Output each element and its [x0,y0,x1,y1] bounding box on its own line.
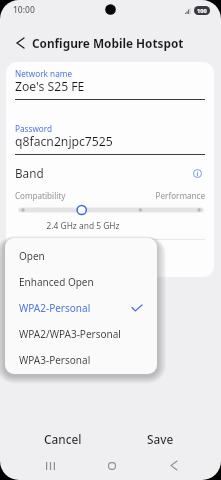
staticText: Open [19,249,45,263]
staticText: Cancel [44,431,82,447]
staticText: Compatibility [15,190,66,201]
staticText: q8facn2njpc7525 [15,133,113,150]
button[interactable]: Network name [15,68,205,108]
staticText: WPA2-Personal [19,301,91,315]
staticText: 100 [197,7,207,15]
button[interactable]: Cancel [33,427,93,451]
staticText: WPA2/WPA3-Personal [19,327,121,341]
button[interactable]: Home [97,451,126,480]
button[interactable]: WPA3-Personal [5,347,157,373]
button[interactable]: Band information [188,164,206,182]
button[interactable]: Password [15,123,205,163]
staticText: Save [147,431,174,447]
staticText: Enhanced Open [19,275,94,289]
staticText: Zoe's S25 FE [15,78,85,95]
staticText: Band [15,165,44,181]
button[interactable]: WPA2/WPA3-Personal [5,321,157,347]
staticText: Configure Mobile Hotspot [32,35,184,51]
staticText: 2.4 GHz and 5 GHz [6,220,187,231]
staticText: WPA3-Personal [19,353,91,367]
button[interactable]: Recent apps [36,451,65,480]
button[interactable]: WPA2-Personal [5,295,157,321]
button[interactable]: Enhanced Open [5,269,157,295]
staticText: Performance [6,190,205,201]
button[interactable]: Back [159,451,188,480]
staticText: Network name [15,68,72,79]
button[interactable]: Navigate up [8,31,32,55]
staticText: Password [15,123,53,134]
button[interactable]: Save [132,427,188,451]
staticText: 10:00 [13,4,35,16]
button[interactable]: Open [5,243,157,269]
